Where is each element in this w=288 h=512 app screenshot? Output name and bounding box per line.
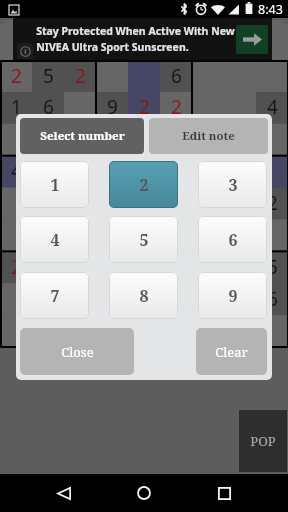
staticText: 1 — [43, 318, 54, 344]
button[interactable]: 6 — [198, 216, 267, 263]
button[interactable]: Home — [120, 474, 168, 512]
staticText: 6 — [43, 94, 54, 120]
button[interactable]: Ad information — [17, 43, 33, 59]
staticText: 2 — [75, 63, 86, 89]
button[interactable]: Open ad — [236, 25, 268, 54]
staticText: 8 — [139, 285, 149, 307]
staticText: 3 — [203, 286, 214, 312]
staticText: 3 — [43, 126, 54, 152]
staticText: 7 — [50, 285, 60, 307]
staticText: 2 — [171, 94, 182, 120]
button[interactable]: Clear — [196, 328, 267, 375]
staticText: 9 — [228, 285, 238, 307]
button[interactable]: 8 — [109, 272, 178, 319]
button[interactable]: 2 — [109, 161, 178, 208]
staticText: 9 — [139, 254, 150, 280]
staticText: Close — [61, 343, 94, 361]
staticText: 1 — [11, 94, 22, 120]
staticText: Edit note — [182, 128, 235, 144]
button[interactable]: 5 — [109, 216, 178, 263]
staticText: 8:43 — [258, 1, 283, 18]
button[interactable]: 7 — [20, 272, 89, 319]
staticText: 5 — [267, 254, 278, 280]
staticText: 2 — [139, 94, 150, 120]
staticText: 4 — [267, 94, 278, 120]
button[interactable]: 4 — [20, 216, 89, 263]
staticText: 2 — [11, 63, 22, 89]
staticText: Stay Protected When Active With New — [36, 24, 235, 38]
button[interactable]: Edit note — [149, 118, 268, 154]
staticText: 5 — [107, 222, 118, 248]
staticText: 2 — [139, 174, 149, 196]
staticText: Select number — [40, 128, 125, 144]
staticText: NIVEA Ultra Sport Sunscreen. — [36, 40, 189, 54]
button[interactable]: 9 — [198, 272, 267, 319]
staticText: 5 — [139, 229, 149, 251]
button[interactable]: 3 — [198, 161, 267, 208]
staticText: 1 — [203, 222, 214, 248]
staticText: 3 — [171, 190, 182, 216]
staticText: 9 — [107, 94, 118, 120]
staticText: 4 — [11, 158, 22, 184]
staticText: 6 — [171, 63, 182, 89]
staticText: 4 — [75, 286, 86, 312]
staticText: 2 — [267, 190, 278, 216]
button[interactable]: POP — [239, 410, 287, 472]
staticText: 2 — [11, 254, 22, 280]
staticText: 1 — [50, 174, 60, 196]
button[interactable]: Close — [20, 328, 134, 375]
staticText: 8 — [203, 126, 214, 152]
button[interactable]: Stay Protected When Active With New — [13, 18, 272, 60]
staticText: Clear — [215, 343, 248, 361]
staticText: 7 — [139, 126, 150, 152]
staticText: POP — [250, 432, 276, 450]
staticText: 6 — [228, 229, 238, 251]
button[interactable]: 1 — [20, 161, 89, 208]
staticText: 3 — [228, 174, 238, 196]
staticText: 4 — [50, 229, 60, 251]
button[interactable]: Back — [40, 474, 88, 512]
staticText: 7 — [43, 222, 54, 248]
staticText: 8 — [75, 190, 86, 216]
button[interactable]: Recent apps — [200, 474, 248, 512]
button[interactable]: Select number — [20, 118, 144, 154]
staticText: 6 — [267, 286, 278, 312]
staticText: 5 — [43, 63, 54, 89]
